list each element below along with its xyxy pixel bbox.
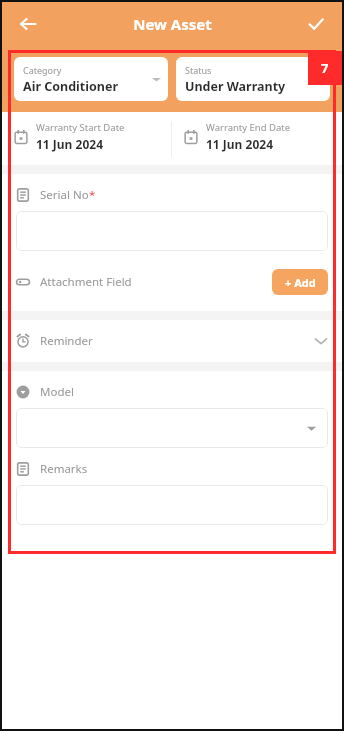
button[interactable] (16, 211, 328, 251)
button[interactable]: Category (14, 57, 168, 101)
button[interactable]: Warranty End Date (172, 121, 342, 152)
staticText: * (89, 187, 96, 203)
button[interactable]: Warranty Start Date (2, 121, 171, 152)
staticText: New Asset (133, 14, 212, 34)
button[interactable] (16, 485, 328, 525)
staticText: Model (40, 384, 74, 400)
staticText: 11 Jun 2024 (36, 136, 103, 152)
staticText: Warranty Start Date (36, 121, 125, 134)
staticText: Status (185, 64, 212, 76)
button[interactable]: + Add (272, 269, 328, 295)
staticText: Air Conditioner (23, 78, 118, 95)
button[interactable] (16, 408, 328, 448)
staticText: Attachment Field (40, 274, 132, 290)
button[interactable]: Save (298, 6, 334, 42)
staticText: Warranty End Date (206, 121, 291, 134)
button[interactable]: Reminder (2, 320, 342, 362)
staticText: Under Warranty (185, 78, 286, 95)
button[interactable]: Status (176, 57, 330, 101)
staticText: 11 Jun 2024 (206, 136, 273, 152)
staticText: Category (23, 64, 62, 76)
staticText: + Add (285, 275, 316, 290)
staticText: Reminder (40, 333, 93, 349)
staticText: Remarks (40, 461, 88, 477)
button[interactable]: Back (10, 6, 46, 42)
staticText: 7 (321, 59, 329, 77)
staticText: Serial No (40, 187, 89, 203)
